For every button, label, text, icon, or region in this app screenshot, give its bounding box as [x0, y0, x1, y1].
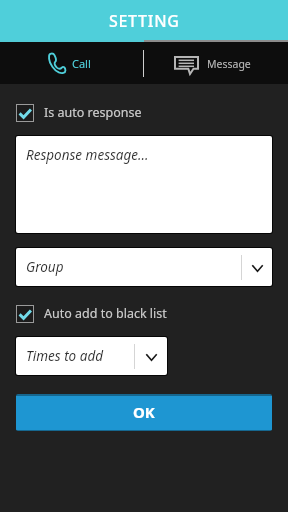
staticText: SETTING	[109, 10, 180, 32]
other: Call	[47, 52, 66, 74]
staticText: Is auto response	[44, 104, 142, 121]
other: Message	[174, 56, 199, 75]
button[interactable]: Times to add	[16, 337, 167, 375]
staticText: Message	[207, 57, 251, 71]
staticText: Response message...	[26, 146, 149, 164]
button[interactable]: Response message...	[16, 136, 272, 233]
button[interactable]: OK	[16, 394, 272, 431]
button[interactable]: Auto add to black list	[16, 304, 167, 323]
staticText: OK	[133, 402, 155, 422]
button[interactable]: Message	[144, 42, 288, 84]
staticText: Group	[26, 258, 241, 276]
button[interactable]: Call	[0, 42, 143, 84]
staticText: Auto add to black list	[44, 305, 167, 322]
staticText: Times to add	[26, 347, 134, 365]
button[interactable]: Group	[16, 248, 272, 286]
staticText: Call	[72, 56, 91, 71]
button[interactable]: Is auto response	[16, 103, 142, 122]
